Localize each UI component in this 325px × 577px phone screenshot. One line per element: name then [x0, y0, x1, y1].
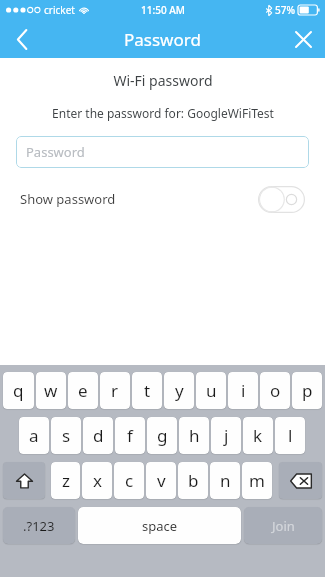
button[interactable]: Show password — [20, 182, 305, 216]
staticText: k — [253, 424, 263, 447]
staticText: .?123 — [23, 517, 55, 535]
staticText: cricket — [44, 3, 75, 17]
button[interactable]: g — [147, 417, 177, 454]
button[interactable]: z — [51, 462, 80, 499]
button[interactable]: Close — [281, 20, 325, 58]
staticText: y — [175, 379, 184, 402]
staticText: Join — [272, 517, 295, 535]
button[interactable]: m — [242, 462, 272, 499]
button[interactable]: l — [275, 417, 305, 454]
button[interactable]: j — [211, 417, 241, 454]
button[interactable]: x — [82, 462, 112, 499]
staticText: 57% — [275, 3, 295, 17]
button[interactable]: Backspace — [279, 462, 322, 499]
staticText: j — [224, 424, 229, 447]
staticText: c — [125, 469, 134, 492]
button[interactable]: h — [179, 417, 209, 454]
button[interactable]: i — [228, 372, 258, 409]
staticText: r — [111, 379, 119, 402]
staticText: q — [13, 379, 24, 402]
button[interactable]: p — [292, 372, 322, 409]
button[interactable]: c — [114, 462, 144, 499]
staticText: Password — [124, 28, 201, 51]
button[interactable]: space — [78, 507, 241, 544]
button[interactable]: b — [178, 462, 208, 499]
staticText: f — [127, 424, 133, 447]
button[interactable]: Shift — [3, 462, 45, 499]
staticText: Wi-Fi password — [113, 71, 213, 90]
button[interactable]: o — [260, 372, 290, 409]
button[interactable]: Back — [0, 20, 44, 58]
staticText: l — [288, 424, 293, 447]
staticText: h — [189, 424, 200, 447]
staticText: u — [206, 379, 217, 402]
button[interactable]: s — [51, 417, 81, 454]
staticText: s — [62, 424, 71, 447]
button[interactable]: .?123 — [3, 507, 75, 544]
staticText: b — [188, 469, 199, 492]
staticText: d — [93, 424, 104, 447]
button[interactable]: a — [19, 417, 49, 454]
button[interactable]: n — [210, 462, 240, 499]
staticText: t — [144, 379, 151, 402]
staticText: w — [44, 379, 58, 402]
button[interactable]: r — [100, 372, 130, 409]
staticText: m — [249, 469, 265, 492]
button[interactable]: f — [115, 417, 145, 454]
button[interactable]: q — [3, 372, 34, 409]
staticText: v — [157, 469, 166, 492]
staticText: e — [78, 379, 88, 402]
staticText: i — [241, 379, 246, 402]
staticText: Password — [26, 143, 85, 161]
staticText: n — [220, 469, 231, 492]
button[interactable]: y — [164, 372, 194, 409]
button[interactable]: v — [146, 462, 176, 499]
staticText: space — [142, 517, 178, 535]
button[interactable]: Join — [244, 507, 322, 544]
button[interactable]: k — [243, 417, 273, 454]
staticText: o — [270, 379, 281, 402]
button[interactable]: t — [132, 372, 162, 409]
button[interactable]: e — [68, 372, 98, 409]
button[interactable]: u — [196, 372, 226, 409]
staticText: z — [62, 469, 70, 492]
button[interactable]: d — [83, 417, 113, 454]
button[interactable]: Password — [16, 136, 309, 168]
staticText: g — [157, 424, 168, 447]
staticText: 11:50 AM — [141, 3, 185, 17]
staticText: Enter the password for: GoogleWiFiTest — [52, 105, 274, 121]
staticText: a — [29, 424, 39, 447]
staticText: x — [93, 469, 102, 492]
button[interactable]: w — [36, 372, 66, 409]
staticText: p — [302, 379, 313, 402]
staticText: Show password — [20, 190, 116, 208]
